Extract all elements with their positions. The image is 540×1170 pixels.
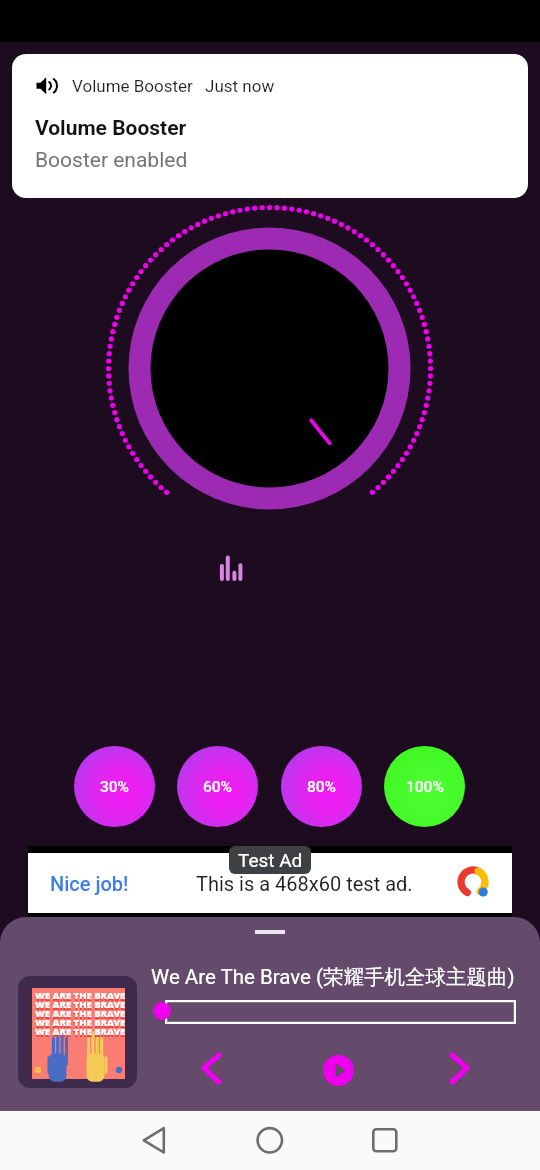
button[interactable]: Volume Booster [12, 54, 528, 198]
staticText: WE ARE THE BRAVE [35, 991, 126, 1004]
staticText: WE ARE THE BRAVE [35, 1007, 126, 1020]
staticText: WE ARE THE BRAVE [35, 1000, 126, 1013]
button[interactable]: Nice job! [28, 853, 512, 913]
staticText: Nice job! [50, 872, 129, 895]
staticText: Volume Booster [72, 76, 193, 96]
staticText: Just now [205, 76, 275, 96]
button[interactable]: 30% [74, 746, 155, 827]
button[interactable]: Recents [363, 1118, 407, 1162]
staticText: WE ARE THE BRAVE [35, 1009, 126, 1022]
staticText: WE ARE THE BRAVE [35, 1016, 126, 1029]
button[interactable]: 100% [384, 746, 465, 827]
button[interactable]: 80% [281, 746, 362, 827]
staticText: WE ARE THE BRAVE [35, 989, 126, 1002]
staticText: 60% [203, 778, 233, 796]
staticText: Booster enabled [35, 148, 188, 173]
button[interactable]: Previous [192, 1050, 228, 1086]
button[interactable]: WE ARE THE BRAVE [18, 976, 137, 1088]
staticText: WE ARE THE BRAVE [35, 1018, 126, 1031]
staticText: WE ARE THE BRAVE [35, 998, 126, 1011]
button[interactable]: Home [248, 1118, 292, 1162]
staticText: 100% [406, 778, 444, 796]
staticText: 80% [307, 778, 337, 796]
staticText: WE ARE THE BRAVE [35, 1027, 126, 1040]
button[interactable] [165, 1000, 516, 1024]
button[interactable]: Next [444, 1050, 480, 1086]
staticText: Test Ad [238, 849, 303, 871]
button[interactable]: Volume dial [100, 199, 440, 539]
button[interactable]: 60% [177, 746, 258, 827]
button[interactable]: Play [321, 1053, 356, 1088]
button[interactable]: Equalizer [214, 552, 246, 584]
staticText: 30% [100, 778, 130, 796]
staticText: Volume Booster [35, 116, 187, 141]
button[interactable]: Back [132, 1118, 176, 1162]
staticText: This is a 468x60 test ad. [196, 872, 413, 895]
staticText: We Are The Brave (荣耀手机全球主题曲) [151, 964, 515, 990]
staticText: WE ARE THE BRAVE [35, 1025, 126, 1038]
